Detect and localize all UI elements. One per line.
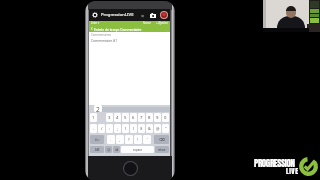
staticText: - xyxy=(93,126,95,131)
button[interactable]: ABC xyxy=(90,146,104,153)
button[interactable]: 0 xyxy=(162,113,169,122)
button[interactable]: " xyxy=(162,124,169,133)
button[interactable]: ; xyxy=(114,124,121,133)
staticText: ⌘ xyxy=(115,148,119,152)
staticText: LIVE xyxy=(286,166,299,177)
button[interactable]: ⌫ xyxy=(154,135,169,144)
button[interactable]: 8 xyxy=(146,113,153,122)
button[interactable]: 7 xyxy=(138,113,145,122)
button[interactable]: Commentaire #1 xyxy=(91,37,170,43)
staticText: 4 xyxy=(116,115,119,121)
staticText: ' xyxy=(147,137,148,142)
staticText: ( xyxy=(125,126,127,131)
staticText: . xyxy=(110,137,112,142)
staticText: ⌫ xyxy=(159,137,165,142)
button[interactable]: / xyxy=(98,124,105,133)
button[interactable]: ) xyxy=(130,124,137,133)
staticText: Entrée de temps Commentaire xyxy=(94,27,142,31)
button[interactable]: #+= xyxy=(90,135,104,144)
button[interactable]: Home xyxy=(123,161,138,176)
button[interactable]: $ xyxy=(138,124,145,133)
staticText: 5 xyxy=(124,115,127,121)
button[interactable]: . xyxy=(107,135,115,144)
button[interactable]: & xyxy=(146,124,153,133)
staticText: / xyxy=(101,126,103,131)
button[interactable]: Menu xyxy=(92,12,98,18)
staticText: × xyxy=(141,12,145,19)
staticText: 2 xyxy=(96,105,100,112)
button[interactable]: ⌘ xyxy=(113,146,120,153)
button[interactable]: ( xyxy=(122,124,129,133)
button[interactable]: @ xyxy=(154,124,161,133)
staticText: ‹ xyxy=(91,25,93,32)
staticText: $ xyxy=(140,126,143,131)
staticText: Liste ▾ xyxy=(91,21,100,25)
staticText: Commentaires xyxy=(91,33,111,37)
button[interactable]: Commentaires xyxy=(91,32,170,37)
button[interactable]: ? xyxy=(125,135,133,144)
button[interactable]: 9 xyxy=(154,113,161,122)
staticText: 6 xyxy=(132,115,135,121)
staticText: ? xyxy=(128,137,130,142)
staticText: 3 xyxy=(108,115,111,121)
button[interactable]: 3 xyxy=(106,113,113,122)
staticText: ABC xyxy=(95,148,100,152)
button[interactable]: Record xyxy=(159,10,168,20)
staticText: 0 xyxy=(164,115,167,121)
staticText: ☺ xyxy=(107,148,111,152)
button[interactable]: retour xyxy=(155,146,169,153)
staticText: ! xyxy=(137,137,139,142)
staticText: & xyxy=(148,126,151,131)
staticText: " xyxy=(165,126,167,131)
button[interactable]: 1 xyxy=(90,113,97,122)
staticText: ; xyxy=(117,126,119,131)
staticText: 9 xyxy=(156,115,159,121)
button[interactable]: ☺ xyxy=(105,146,112,153)
staticText: + Ajouter xyxy=(156,21,168,25)
staticText: : xyxy=(109,126,111,131)
button[interactable]: 5 xyxy=(122,113,129,122)
button[interactable]: Camera xyxy=(149,10,157,20)
button[interactable]: ‹ xyxy=(91,25,170,32)
staticText: 8 xyxy=(148,115,151,121)
button[interactable]: 4 xyxy=(114,113,121,122)
button[interactable]: - xyxy=(90,124,97,133)
staticText: retour xyxy=(158,148,166,152)
staticText: , xyxy=(119,137,121,142)
button[interactable]: ' xyxy=(143,135,151,144)
button[interactable]: espace xyxy=(121,146,154,153)
button[interactable]: 6 xyxy=(130,113,137,122)
button[interactable]: Close xyxy=(140,10,146,20)
staticText: ProgressionLIVE xyxy=(101,12,134,18)
staticText: ) xyxy=(133,126,135,131)
button[interactable]: , xyxy=(116,135,124,144)
staticText: Commentaire #1 xyxy=(91,38,118,42)
staticText: #+= xyxy=(95,138,100,142)
staticText: 1 xyxy=(92,115,95,121)
button[interactable]: ! xyxy=(134,135,142,144)
staticText: @ xyxy=(156,126,160,131)
staticText: Sauve xyxy=(143,21,151,25)
staticText: PROGRESSION xyxy=(254,156,295,170)
staticText: 7 xyxy=(140,115,143,121)
button[interactable]: : xyxy=(106,124,113,133)
staticText: espace xyxy=(133,148,143,152)
